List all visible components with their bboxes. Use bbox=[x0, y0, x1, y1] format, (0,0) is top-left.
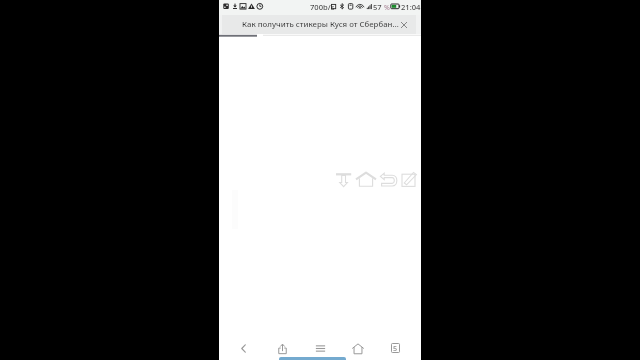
staticText: 700b/s bbox=[310, 2, 335, 12]
staticText: 57 bbox=[373, 2, 382, 12]
button[interactable]: Back bbox=[225, 330, 261, 360]
button[interactable]: Tabs: 5 open bbox=[377, 330, 413, 360]
button[interactable]: Home bbox=[340, 330, 376, 360]
button[interactable]: Menu bbox=[302, 330, 338, 360]
staticText: Как получить стикеры Куся от Сбербан… bbox=[242, 19, 399, 30]
button[interactable] bbox=[219, 15, 421, 34]
staticText: 5 bbox=[393, 343, 398, 353]
button[interactable]: Share bbox=[264, 330, 300, 360]
button[interactable]: Close tab bbox=[396, 17, 412, 33]
staticText: % bbox=[384, 3, 390, 13]
staticText: 21:04 bbox=[401, 2, 421, 12]
